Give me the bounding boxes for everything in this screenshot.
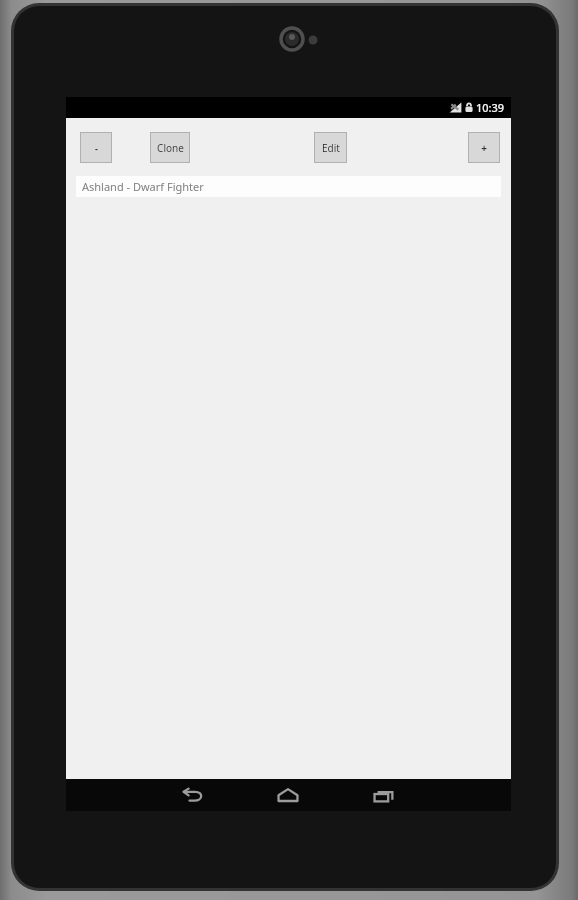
staticText: 10:39 [476,100,505,115]
button[interactable]: Back [164,779,222,811]
staticText: Ashland - Dwarf Fighter [82,179,204,194]
button[interactable]: Ashland - Dwarf Fighter [76,176,501,197]
button[interactable]: Home [259,779,317,811]
staticText: Clone [157,141,184,155]
staticText: - [95,142,98,154]
staticText: Edit [322,141,340,155]
staticText: + [481,141,487,155]
button[interactable]: Edit [315,133,346,162]
button[interactable]: Clone [151,133,189,162]
button[interactable]: Add [469,133,499,162]
button[interactable]: Recent apps [355,779,413,811]
button[interactable]: Decrease [81,133,111,162]
